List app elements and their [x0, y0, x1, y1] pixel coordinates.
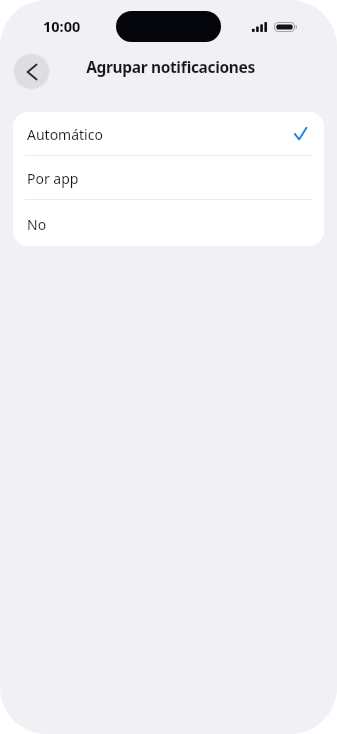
- staticText: Agrupar notificaciones: [2, 56, 337, 77]
- staticText: No: [27, 215, 47, 234]
- other: Selected: [294, 127, 307, 140]
- staticText: Por app: [27, 169, 79, 188]
- staticText: Automático: [27, 125, 103, 144]
- staticText: 10:00: [43, 16, 81, 36]
- button[interactable]: No: [13, 200, 324, 246]
- button[interactable]: Por app: [13, 156, 324, 200]
- button[interactable]: Automático: [13, 112, 324, 156]
- button[interactable]: Back: [13, 53, 50, 90]
